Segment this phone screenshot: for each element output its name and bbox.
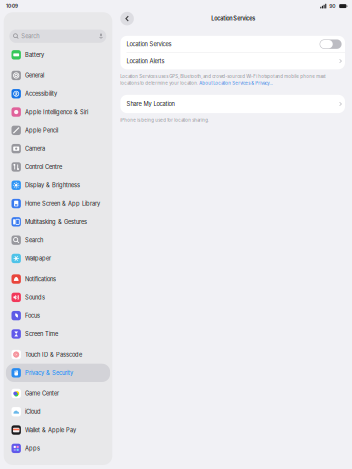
staticText: Camera — [25, 145, 45, 152]
staticText: Location Services — [126, 41, 171, 48]
button[interactable]: Screen Time — [6, 325, 110, 343]
staticText: General — [25, 72, 44, 79]
staticText: Location Services uses GPS, Bluetooth, a… — [120, 74, 325, 79]
staticText: Notifications — [25, 276, 56, 282]
button[interactable]: Sounds — [6, 288, 110, 306]
staticText: Location Alerts — [126, 58, 164, 64]
staticText: Focus — [25, 312, 40, 319]
button[interactable]: Apps — [6, 439, 110, 457]
button[interactable]: Multitasking & Gestures — [6, 213, 110, 231]
button[interactable]: Search — [4, 12, 112, 43]
button[interactable]: Touch ID & Passcode — [6, 345, 110, 364]
staticText: Wallpaper — [25, 255, 51, 262]
button[interactable]: Location Services — [120, 36, 345, 52]
button[interactable]: Display & Brightness — [6, 176, 110, 194]
button[interactable]: Wallet & Apple Pay — [6, 421, 110, 439]
staticText: Apps — [25, 445, 40, 452]
button[interactable]: Focus — [6, 306, 110, 325]
staticText: About Location Services & Privacy… — [199, 80, 273, 86]
staticText: Privacy & Security — [25, 369, 73, 376]
staticText: Touch ID & Passcode — [25, 351, 82, 358]
staticText: Apple Intelligence & Siri — [25, 109, 88, 115]
staticText: Control Centre — [25, 163, 62, 170]
staticText: Sounds — [25, 294, 45, 301]
staticText: Share My Location — [126, 100, 174, 107]
staticText: Game Center — [25, 390, 59, 397]
staticText: Screen Time — [25, 330, 58, 337]
staticText: Search — [21, 33, 39, 40]
button[interactable]: iCloud — [6, 403, 110, 421]
staticText: Multitasking & Gestures — [25, 218, 87, 225]
staticText: locations to determine your location. — [120, 80, 199, 86]
button[interactable]: Location Alerts — [120, 53, 345, 69]
staticText: Battery — [25, 51, 44, 58]
staticText: Display & Brightness — [25, 182, 80, 189]
button[interactable]: Share My Location — [120, 95, 345, 113]
button[interactable]: Camera — [6, 139, 110, 158]
button[interactable]: Privacy & Security — [6, 364, 110, 382]
staticText: Wallet & Apple Pay — [25, 427, 76, 433]
button[interactable]: Game Center — [6, 384, 110, 403]
staticText: iPhone is being used for location sharin… — [120, 117, 209, 123]
button[interactable]: Search — [6, 231, 110, 249]
staticText: Search — [25, 237, 43, 244]
button[interactable]: Battery — [6, 46, 110, 64]
staticText: 10:09 — [6, 3, 18, 9]
button[interactable]: Accessibility — [6, 85, 110, 103]
button[interactable]: General — [6, 66, 110, 85]
button[interactable]: Back — [120, 12, 134, 25]
button[interactable]: Apple Intelligence & Siri — [6, 103, 110, 121]
staticText: Home Screen & App Library — [25, 200, 100, 207]
staticText: Apple Pencil — [25, 127, 58, 134]
button[interactable]: Apple Pencil — [6, 121, 110, 139]
staticText: 90 — [329, 3, 335, 9]
button[interactable]: Notifications — [6, 270, 110, 288]
button[interactable]: Wallpaper — [6, 249, 110, 268]
button[interactable]: Home Screen & App Library — [6, 194, 110, 213]
button[interactable]: Control Centre — [6, 158, 110, 176]
staticText: iCloud — [25, 408, 41, 415]
staticText: Location Services — [211, 15, 255, 22]
staticText: Accessibility — [25, 90, 57, 97]
